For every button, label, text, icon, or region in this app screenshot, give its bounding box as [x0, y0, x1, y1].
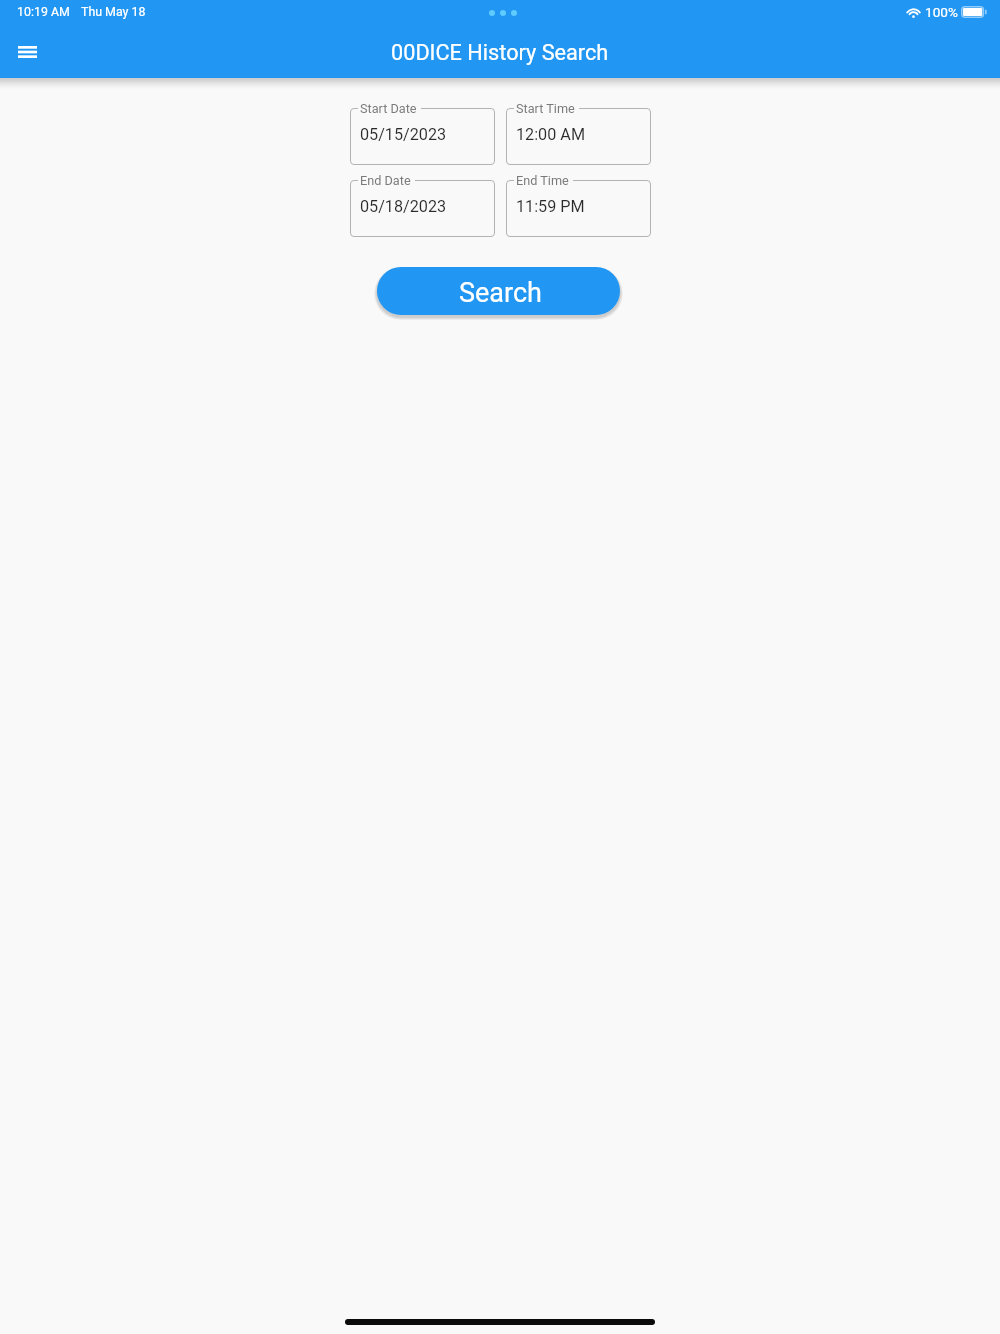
- staticText: Search: [459, 277, 542, 309]
- staticText: 11:59 PM: [516, 197, 585, 216]
- staticText: 05/15/2023: [360, 125, 447, 144]
- staticText: End Time: [516, 173, 569, 188]
- staticText: End Date: [360, 173, 411, 188]
- staticText: Start Date: [360, 101, 417, 116]
- staticText: Start Time: [516, 101, 575, 116]
- staticText: 05/18/2023: [360, 197, 447, 216]
- button[interactable]: Start Time: [506, 108, 651, 165]
- staticText: 10:19 AM: [17, 4, 70, 19]
- button[interactable]: Search: [377, 267, 620, 315]
- staticText: 12:00 AM: [516, 125, 586, 144]
- staticText: Thu May 18: [81, 4, 146, 19]
- staticText: 100%: [925, 4, 958, 20]
- button[interactable]: Start Date: [350, 108, 495, 165]
- button[interactable]: Open navigation menu: [7, 33, 47, 73]
- staticText: 00DICE History Search: [391, 40, 609, 65]
- button[interactable]: End Date: [350, 180, 495, 237]
- button[interactable]: End Time: [506, 180, 651, 237]
